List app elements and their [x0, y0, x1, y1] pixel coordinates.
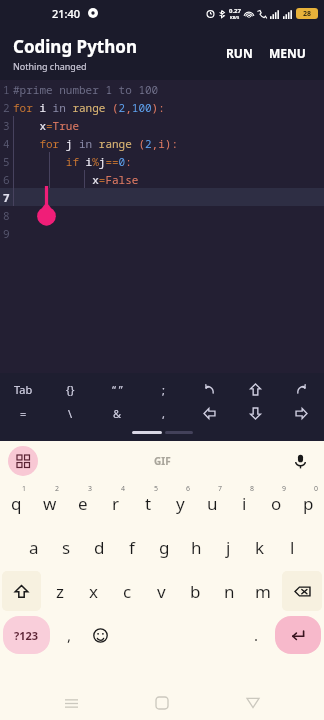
staticText: =: [20, 406, 27, 421]
staticText: k: [255, 536, 265, 559]
staticText: {}: [66, 382, 75, 397]
button[interactable]: Shift: [2, 571, 41, 611]
button[interactable]: h: [180, 525, 212, 569]
staticText: GIF: [154, 454, 171, 468]
button[interactable]: ?123: [3, 616, 50, 654]
button[interactable]: b: [178, 569, 212, 613]
button[interactable]: {}: [47, 377, 94, 401]
staticText: v: [157, 580, 166, 603]
staticText: 1: [22, 484, 27, 494]
staticText: .: [254, 625, 259, 645]
button[interactable]: g: [148, 525, 180, 569]
button[interactable]: Keyboard modes: [8, 446, 38, 476]
button[interactable]: Redo: [278, 377, 324, 401]
staticText: f: [129, 536, 135, 559]
staticText: c: [123, 580, 132, 603]
button[interactable]: Left: [186, 401, 232, 425]
staticText: l: [290, 536, 295, 559]
button[interactable]: e: [66, 481, 99, 525]
button[interactable]: f: [116, 525, 148, 569]
button[interactable]: &: [94, 401, 140, 425]
button[interactable]: a: [17, 525, 50, 569]
staticText: n: [224, 580, 235, 603]
button[interactable]: x: [76, 569, 110, 613]
staticText: j: [226, 536, 231, 559]
staticText: 3: [3, 118, 10, 133]
staticText: ,: [67, 625, 72, 645]
staticText: 8: [3, 208, 10, 223]
staticText: 8: [250, 484, 255, 494]
button[interactable]: ,: [53, 613, 85, 657]
button[interactable]: “ ”: [94, 377, 140, 401]
staticText: “ ”: [112, 382, 123, 397]
staticText: i: [242, 492, 247, 515]
staticText: RUN: [226, 45, 253, 61]
button[interactable]: Down: [232, 401, 278, 425]
button[interactable]: n: [212, 569, 246, 613]
button[interactable]: ,: [140, 401, 186, 425]
staticText: 21:40: [52, 6, 81, 21]
button[interactable]: GIF: [146, 446, 179, 476]
button[interactable]: r: [99, 481, 132, 525]
button[interactable]: MENU: [261, 39, 314, 67]
staticText: 2: [3, 100, 10, 115]
staticText: 3: [88, 484, 93, 494]
staticText: s: [62, 536, 71, 559]
button[interactable]: c: [110, 569, 144, 613]
staticText: if i%j==0:: [13, 154, 132, 169]
button[interactable]: l: [276, 525, 308, 569]
button[interactable]: i: [228, 481, 260, 525]
staticText: e: [78, 492, 88, 515]
staticText: 5: [154, 484, 159, 494]
button[interactable]: ;: [140, 377, 186, 401]
button[interactable]: q: [0, 481, 33, 525]
button[interactable]: \: [47, 401, 94, 425]
staticText: m: [255, 580, 271, 603]
button[interactable]: t: [132, 481, 164, 525]
staticText: ,: [162, 406, 165, 421]
button[interactable]: y: [164, 481, 196, 525]
button[interactable]: j: [212, 525, 244, 569]
staticText: 9: [3, 226, 10, 241]
button[interactable]: RUN: [218, 39, 261, 67]
staticText: 4: [3, 136, 10, 151]
button[interactable]: Tab: [0, 377, 47, 401]
button[interactable]: o: [260, 481, 292, 525]
button[interactable]: z: [43, 569, 76, 613]
staticText: ?123: [14, 628, 39, 643]
staticText: KB/S: [230, 15, 240, 20]
staticText: 5: [3, 154, 10, 169]
staticText: q: [11, 492, 22, 515]
staticText: b: [190, 580, 201, 603]
staticText: 6: [186, 484, 191, 494]
staticText: z: [56, 580, 64, 603]
button[interactable]: u: [196, 481, 228, 525]
staticText: 9: [282, 484, 287, 494]
button[interactable]: .: [241, 613, 272, 657]
button[interactable]: p: [292, 481, 324, 525]
button[interactable]: Up: [232, 377, 278, 401]
button[interactable]: Enter: [275, 616, 321, 654]
staticText: Nothing changed: [13, 60, 87, 72]
button[interactable]: =: [0, 401, 47, 425]
staticText: d: [94, 536, 105, 559]
button[interactable]: Voice input: [288, 449, 312, 473]
button[interactable]: Home: [142, 686, 182, 720]
button[interactable]: v: [144, 569, 178, 613]
button[interactable]: w: [33, 481, 66, 525]
staticText: for j in range (2,i):: [13, 136, 178, 151]
staticText: MENU: [269, 45, 306, 61]
button[interactable]: Undo: [186, 377, 232, 401]
button[interactable]: Back: [233, 686, 273, 720]
button[interactable]: m: [246, 569, 280, 613]
button[interactable]: Emoji: [85, 613, 116, 657]
button[interactable]: k: [244, 525, 276, 569]
button[interactable]: Recent apps: [51, 686, 91, 720]
button[interactable]: Backspace: [282, 571, 322, 611]
staticText: for i in range (2,100):: [13, 100, 165, 115]
button[interactable]: s: [50, 525, 83, 569]
button[interactable]: d: [83, 525, 116, 569]
staticText: #prime number 1 to 100: [13, 82, 159, 97]
button[interactable]: Right: [278, 401, 324, 425]
